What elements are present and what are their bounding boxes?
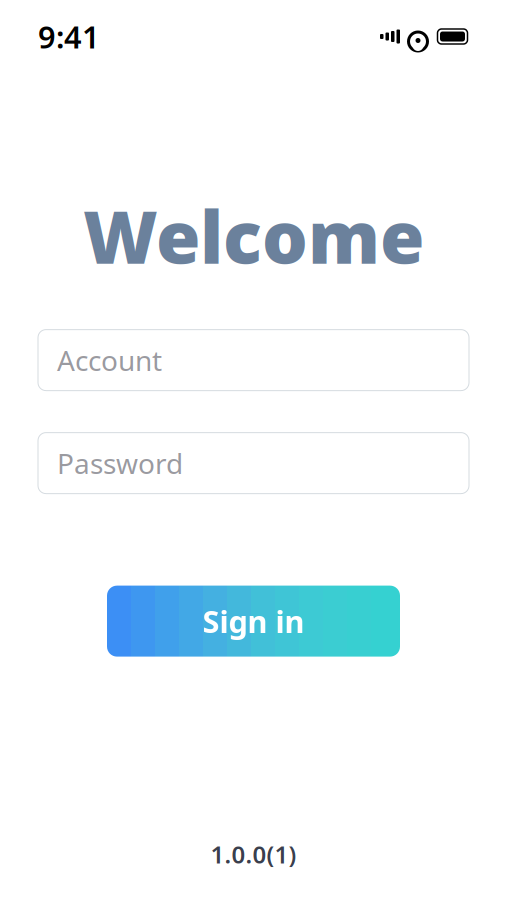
staticText: 1.0.0(1): [210, 838, 296, 870]
staticText: 9:41: [38, 16, 100, 57]
button[interactable]: Password: [38, 433, 469, 494]
staticText: Welcome: [83, 188, 424, 284]
staticText: Password: [57, 444, 183, 482]
button[interactable]: Sign in: [107, 586, 400, 657]
staticText: Sign in: [202, 601, 304, 641]
staticText: Account: [57, 341, 162, 379]
button[interactable]: Account: [38, 330, 469, 391]
